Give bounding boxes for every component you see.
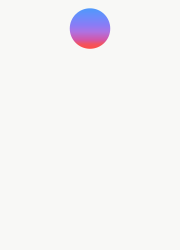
button[interactable]: Assistant	[70, 8, 110, 49]
